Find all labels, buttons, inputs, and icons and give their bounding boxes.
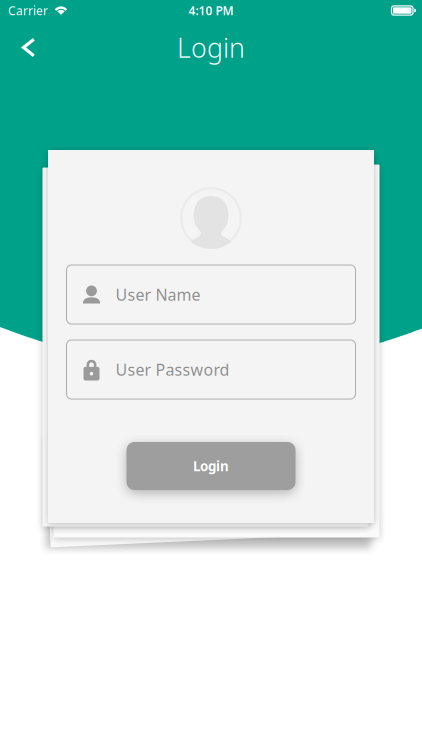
staticText: 4:10 PM xyxy=(188,2,233,18)
button[interactable]: User Name xyxy=(66,265,355,324)
button[interactable]: Back xyxy=(0,23,57,71)
button[interactable]: Login xyxy=(126,442,295,490)
staticText: User Name xyxy=(115,284,200,305)
staticText: Login xyxy=(177,30,245,65)
staticText: Carrier xyxy=(8,2,48,18)
staticText: User Password xyxy=(115,359,229,380)
button[interactable]: User Password xyxy=(66,340,355,399)
staticText: Login xyxy=(193,457,229,475)
